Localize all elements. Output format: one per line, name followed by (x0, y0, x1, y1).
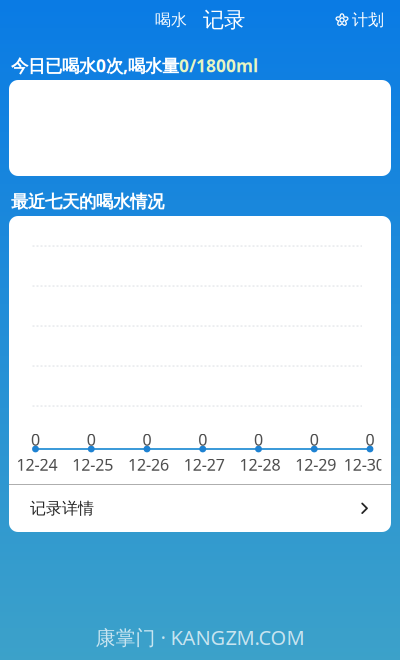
staticText: 12-28 (239, 454, 280, 475)
staticText: 12-25 (72, 454, 113, 475)
staticText: 12-26 (128, 454, 169, 475)
staticText: 0 (254, 429, 263, 450)
staticText: 记录详情 (30, 499, 94, 518)
staticText: 12-30 (344, 454, 385, 475)
staticText: 0 (310, 429, 319, 450)
staticText: 0 (142, 429, 151, 450)
staticText: 0 (87, 429, 96, 450)
button[interactable]: 记录 (203, 7, 245, 33)
button[interactable]: 记录详情 (9, 485, 391, 532)
staticText: 0 (198, 429, 207, 450)
staticText: 喝水 (155, 10, 187, 30)
staticText: 最近七天的喝水情况 (11, 191, 164, 212)
staticText: 0 (31, 429, 40, 450)
button[interactable]: 计划 (335, 7, 400, 33)
staticText: 今日已喝水0次,喝水量 (11, 54, 179, 77)
staticText: 0/1800ml (179, 54, 258, 77)
button[interactable]: 喝水 (155, 7, 187, 33)
staticText: 记录 (203, 7, 245, 33)
staticText: 康掌门 · KANGZM.COM (95, 624, 304, 651)
staticText: 12-27 (184, 454, 225, 475)
staticText: 计划 (352, 10, 384, 30)
staticText: 12-24 (16, 454, 57, 475)
staticText: 0 (365, 429, 374, 450)
staticText: 12-29 (295, 454, 336, 475)
